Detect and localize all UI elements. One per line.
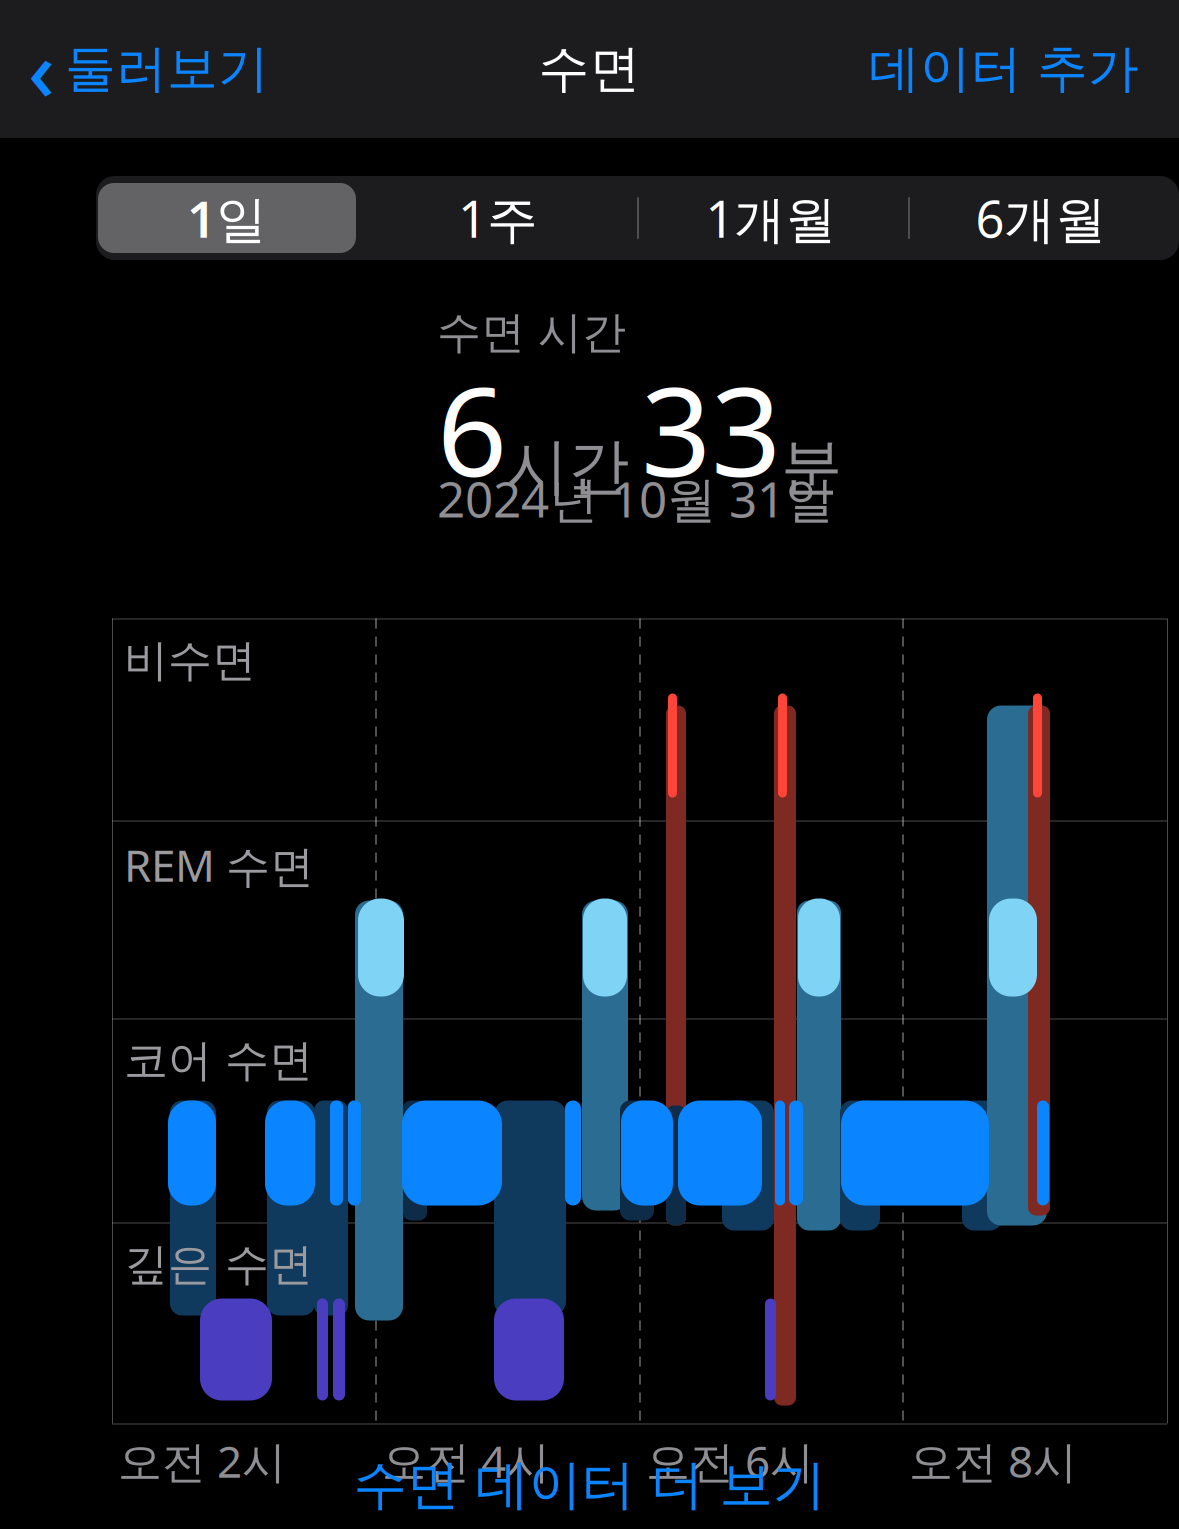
button[interactable]: 6개월 bbox=[916, 183, 1166, 253]
staticText: 둘러보기 bbox=[65, 38, 269, 100]
button[interactable]: ‹ bbox=[0, 6, 269, 132]
staticText: 33 bbox=[641, 348, 781, 510]
staticText: REM 수면 bbox=[124, 835, 314, 894]
staticText: 데이터 추가 bbox=[869, 38, 1139, 100]
staticText: 코어 수면 bbox=[124, 1033, 313, 1087]
staticText: 오전 4시 bbox=[382, 1431, 550, 1490]
staticText: ‹ bbox=[28, 14, 55, 124]
staticText: 시간 bbox=[507, 429, 629, 504]
button[interactable]: 1일 bbox=[98, 183, 356, 253]
staticText: 오전 8시 bbox=[909, 1431, 1077, 1490]
staticText: 오전 2시 bbox=[118, 1431, 286, 1490]
staticText: 1개월 bbox=[705, 184, 836, 252]
staticText: 수면 시간 bbox=[437, 306, 626, 360]
staticText: 수면 데이터 더 보기 bbox=[353, 1452, 825, 1518]
staticText: 분 bbox=[781, 429, 842, 504]
button[interactable]: 수면 데이터 더 보기 bbox=[0, 1440, 1179, 1529]
staticText: 1주 bbox=[458, 184, 538, 252]
button[interactable]: 데이터 추가 bbox=[869, 30, 1179, 108]
staticText: 비수면 bbox=[124, 633, 256, 687]
staticText: 2024년 10월 31일 bbox=[437, 466, 834, 531]
staticText: 수면 bbox=[538, 38, 640, 100]
staticText: 오전 6시 bbox=[646, 1431, 814, 1490]
staticText: 6 bbox=[437, 348, 507, 510]
staticText: 1일 bbox=[187, 184, 267, 252]
staticText: 6개월 bbox=[975, 184, 1106, 252]
button[interactable]: 1주 bbox=[368, 183, 628, 253]
staticText: 깊은 수면 bbox=[124, 1237, 313, 1291]
button[interactable]: 1개월 bbox=[646, 183, 896, 253]
